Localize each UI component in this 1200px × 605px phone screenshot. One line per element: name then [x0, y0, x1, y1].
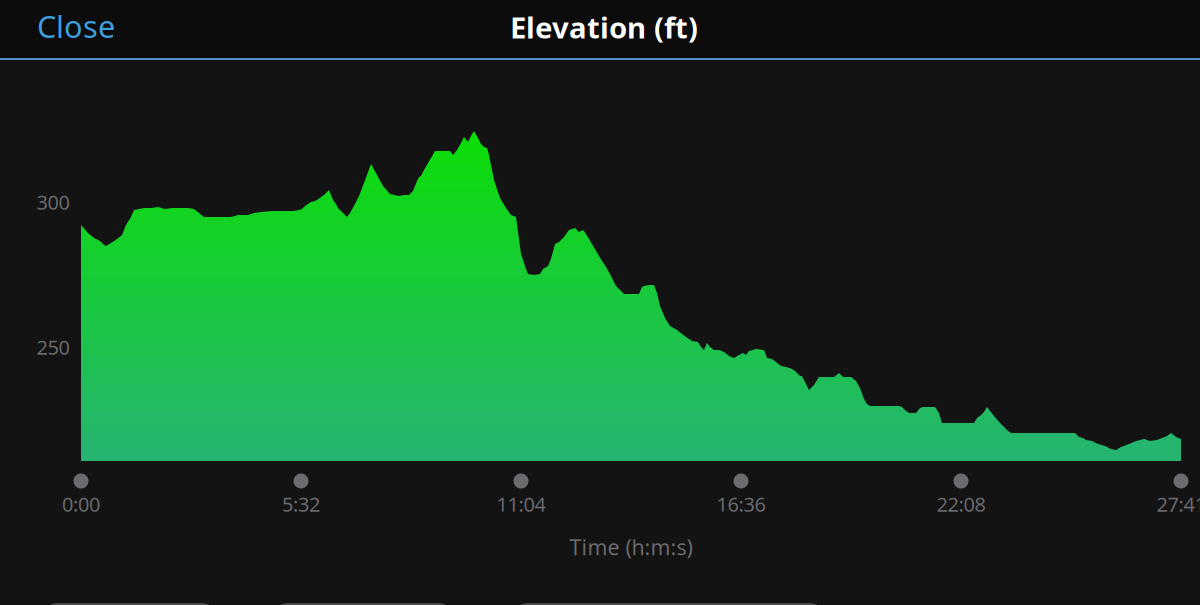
staticText: 250 [36, 334, 69, 360]
button[interactable]: Chart option [272, 604, 454, 605]
staticText: 22:08 [936, 491, 985, 517]
staticText: Time (h:m:s) [569, 533, 692, 561]
staticText: 0:00 [62, 491, 100, 517]
button[interactable]: Chart option [42, 604, 217, 605]
staticText: Close [37, 6, 115, 46]
staticText: Elevation (ft) [510, 7, 698, 46]
button[interactable]: Chart option [512, 604, 825, 605]
button[interactable]: Close [25, 0, 127, 56]
staticText: 5:32 [282, 491, 320, 517]
staticText: 300 [36, 189, 69, 215]
staticText: 16:36 [716, 491, 765, 517]
staticText: 27:41 [1156, 491, 1200, 517]
staticText: 11:04 [496, 491, 545, 517]
